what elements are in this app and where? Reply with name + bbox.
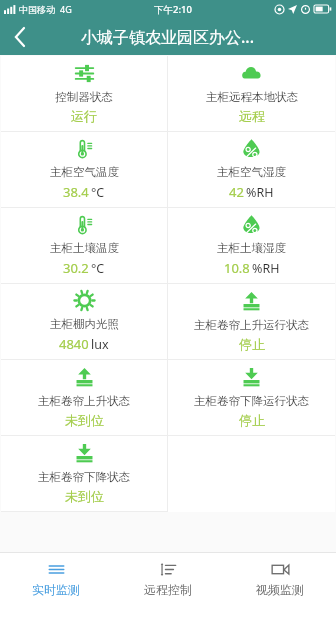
staticText: °C	[91, 184, 105, 201]
staticText: 远程	[239, 108, 265, 124]
button[interactable]: 实时监测	[0, 553, 112, 605]
button[interactable]: 主柜空气温度	[1, 132, 167, 207]
staticText: 42	[229, 183, 244, 201]
staticText: 未到位	[65, 412, 104, 428]
button[interactable]: 主柜土壤湿度	[168, 208, 335, 283]
staticText: 实时监测	[32, 582, 80, 597]
button[interactable]: 主柜卷帘下降状态	[1, 436, 167, 511]
staticText: 中国移动	[19, 4, 55, 15]
staticText: 主柜空气温度	[50, 165, 119, 179]
staticText: lux	[91, 336, 109, 353]
button[interactable]: 主柜土壤温度	[1, 208, 167, 283]
staticText: 主柜空气湿度	[217, 165, 286, 179]
button[interactable]: 控制器状态	[1, 56, 167, 131]
button[interactable]: 远程控制	[112, 553, 224, 605]
button[interactable]: 返回	[0, 18, 40, 55]
staticText: °C	[91, 260, 105, 277]
staticText: 视频监测	[256, 582, 304, 597]
staticText: %RH	[252, 260, 280, 277]
staticText: 主柜土壤湿度	[217, 241, 286, 255]
staticText: 主柜远程本地状态	[206, 90, 298, 104]
staticText: 主柜土壤温度	[50, 241, 119, 255]
button[interactable]: 主柜空气湿度	[168, 132, 335, 207]
button[interactable]: 主柜棚内光照	[1, 284, 167, 359]
staticText: 远程控制	[144, 582, 192, 597]
button[interactable]: 视频监测	[224, 553, 336, 605]
staticText: 4G	[60, 3, 72, 15]
button[interactable]: 主柜卷帘上升运行状态	[168, 284, 335, 359]
staticText: 小城子镇农业园区办公...	[81, 26, 255, 48]
staticText: 未到位	[65, 488, 104, 504]
staticText: 4840	[59, 335, 89, 353]
button[interactable]: 主柜卷帘下降运行状态	[168, 360, 335, 435]
staticText: 停止	[239, 336, 265, 352]
staticText: 主柜棚内光照	[50, 317, 119, 331]
staticText: 38.4	[63, 183, 89, 201]
staticText: 主柜卷帘下降运行状态	[194, 394, 309, 408]
staticText: 下午2:10	[154, 3, 192, 16]
staticText: %RH	[246, 184, 274, 201]
staticText: 主柜卷帘下降状态	[38, 470, 130, 484]
staticText: 主柜卷帘上升状态	[38, 394, 130, 408]
staticText: 运行	[71, 108, 97, 124]
staticText: 停止	[239, 412, 265, 428]
staticText: 主柜卷帘上升运行状态	[194, 318, 309, 332]
staticText: 控制器状态	[55, 90, 113, 104]
staticText: 30.2	[63, 259, 89, 277]
button[interactable]: 主柜远程本地状态	[168, 56, 335, 131]
button[interactable]: 主柜卷帘上升状态	[1, 360, 167, 435]
staticText: 10.8	[224, 259, 250, 277]
